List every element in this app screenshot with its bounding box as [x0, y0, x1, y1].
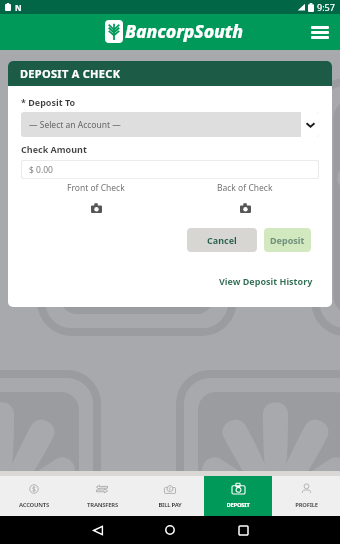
button[interactable]: Front of Check [85, 203, 107, 213]
staticText: N [15, 2, 22, 13]
button[interactable]: Back of Check [234, 203, 256, 213]
button[interactable]: ACCOUNTS [0, 476, 68, 516]
staticText: — Select an Account — [29, 119, 121, 131]
button[interactable]: DEPOSIT [204, 476, 272, 516]
button[interactable]: Menu [307, 19, 333, 45]
staticText: BILL PAY [158, 501, 182, 509]
staticText: 9:57 [317, 1, 335, 13]
staticText: TRANSFERS [87, 501, 118, 509]
staticText: Back of Check [217, 182, 273, 194]
staticText: * Deposit To [21, 96, 76, 108]
button[interactable]: Deposit [264, 228, 311, 252]
button[interactable]: Back [86, 518, 110, 542]
button[interactable]: — Select an Account — [21, 112, 319, 137]
staticText: Deposit [270, 234, 305, 246]
staticText: View Deposit History [219, 275, 313, 287]
staticText: $ 0.00 [29, 164, 53, 176]
button[interactable]: View Deposit History [219, 275, 313, 287]
staticText: ACCOUNTS [19, 501, 49, 509]
staticText: DEPOSIT A CHECK [20, 66, 121, 81]
button[interactable]: BILL PAY [136, 476, 204, 516]
staticText: BancorpSouth [125, 19, 244, 43]
staticText: Front of Check [67, 182, 125, 194]
staticText: DEPOSIT [226, 501, 250, 509]
button[interactable]: Recents [231, 518, 255, 542]
button[interactable]: PROFILE [272, 476, 340, 516]
staticText: Check Amount [21, 143, 87, 155]
button[interactable]: Home [158, 518, 182, 542]
button[interactable]: Cancel [187, 228, 257, 252]
button[interactable]: TRANSFERS [68, 476, 136, 516]
staticText: PROFILE [295, 501, 318, 509]
button[interactable]: $ 0.00 [21, 160, 319, 179]
staticText: Cancel [207, 234, 237, 246]
